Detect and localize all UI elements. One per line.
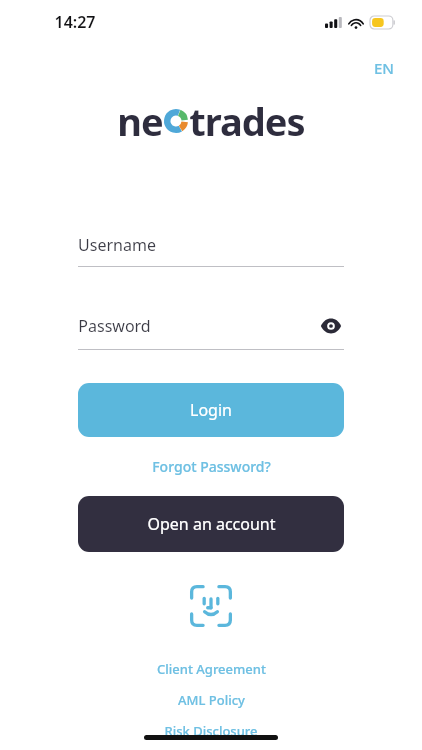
staticText: Login: [190, 399, 232, 421]
button[interactable]: Face ID login: [185, 580, 237, 632]
staticText: 14:27: [54, 11, 96, 33]
button[interactable]: EN: [368, 56, 400, 80]
button[interactable]: Open an account: [78, 496, 344, 552]
button[interactable]: Show password: [318, 313, 344, 339]
staticText: AML Policy: [178, 691, 245, 709]
button[interactable]: Password: [78, 313, 344, 350]
button[interactable]: Forgot Password?: [144, 454, 279, 479]
button[interactable]: Username: [78, 234, 344, 267]
staticText: EN: [374, 58, 394, 78]
staticText: Password: [78, 315, 151, 337]
staticText: trades: [189, 95, 305, 147]
button[interactable]: Client Agreement: [147, 658, 276, 680]
staticText: Client Agreement: [157, 660, 266, 678]
staticText: ne: [117, 95, 163, 147]
button[interactable]: Login: [78, 383, 344, 437]
staticText: Username: [78, 234, 156, 256]
staticText: Open an account: [147, 513, 276, 535]
staticText: Forgot Password?: [152, 457, 271, 476]
button[interactable]: AML Policy: [168, 689, 255, 711]
button[interactable]: Risk Disclosure: [154, 720, 268, 742]
staticText: Risk Disclosure: [164, 722, 258, 740]
